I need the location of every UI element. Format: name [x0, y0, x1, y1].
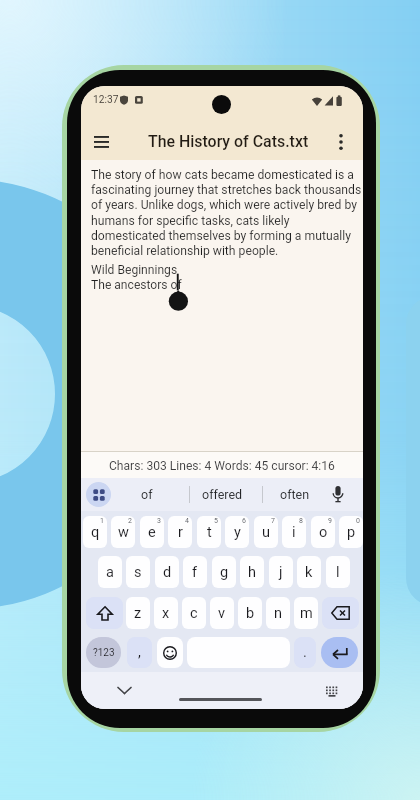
staticText: w [118, 524, 129, 541]
button[interactable] [318, 681, 345, 702]
button[interactable] [89, 130, 113, 154]
button[interactable] [329, 130, 353, 154]
staticText: humans for specific tasks, cats likely [91, 214, 290, 228]
staticText: The History of Cats.txt [148, 132, 309, 151]
button[interactable] [322, 597, 359, 629]
button[interactable] [326, 482, 350, 506]
button[interactable] [321, 637, 358, 668]
staticText: l [336, 564, 340, 581]
button[interactable] [86, 482, 111, 507]
staticText: v [218, 605, 226, 622]
staticText: 9 [328, 517, 332, 525]
button[interactable]: , [127, 637, 152, 668]
staticText: e [148, 524, 156, 541]
staticText: ?123 [93, 647, 115, 659]
button[interactable]: i [282, 516, 306, 548]
button[interactable] [86, 597, 123, 629]
staticText: b [246, 605, 255, 622]
staticText: 8 [299, 517, 303, 525]
button[interactable]: s [126, 556, 150, 588]
staticText: z [134, 605, 142, 622]
button[interactable]: j [269, 556, 293, 588]
button[interactable]: a [98, 556, 122, 588]
staticText: d [163, 564, 172, 581]
staticText: of years. Unlike dogs, which were active… [91, 198, 357, 212]
staticText: beneficial relationship with people. [91, 244, 279, 258]
staticText: u [262, 524, 270, 541]
staticText: k [305, 564, 313, 581]
staticText: o [319, 524, 328, 541]
button[interactable]: h [240, 556, 264, 588]
button[interactable]: q [83, 516, 107, 548]
staticText: fascinating journey that stretches back … [91, 183, 362, 197]
button[interactable]: m [294, 597, 318, 629]
staticText: The story of how cats became domesticate… [91, 168, 354, 182]
button[interactable]: p [339, 516, 363, 548]
button[interactable]: c [182, 597, 206, 629]
button[interactable]: g [212, 556, 236, 588]
staticText: s [134, 564, 142, 581]
staticText: x [162, 605, 170, 622]
button[interactable]: w [111, 516, 135, 548]
staticText: i [292, 524, 296, 541]
button[interactable]: often [273, 482, 317, 506]
staticText: , [138, 644, 141, 661]
button[interactable]: k [297, 556, 321, 588]
staticText: y [234, 524, 241, 541]
button[interactable] [157, 637, 183, 668]
staticText: f [192, 564, 198, 581]
staticText: 5 [214, 517, 218, 525]
staticText: t [207, 524, 212, 541]
staticText: 0 [356, 517, 360, 525]
staticText: offered [202, 487, 243, 502]
staticText: 1 [100, 517, 104, 525]
staticText: j [279, 564, 283, 581]
staticText: h [248, 564, 256, 581]
button[interactable]: b [238, 597, 262, 629]
staticText: a [106, 564, 114, 581]
staticText: c [190, 605, 198, 622]
staticText: . [303, 644, 307, 661]
button[interactable]: v [210, 597, 234, 629]
button[interactable]: y [225, 516, 249, 548]
staticText: The ancestors of [91, 278, 182, 292]
staticText: g [220, 564, 229, 581]
staticText: Wild Beginnings [91, 263, 178, 277]
button[interactable]: o [311, 516, 335, 548]
staticText: 3 [157, 517, 161, 525]
staticText: of [141, 487, 153, 502]
button[interactable]: z [126, 597, 150, 629]
staticText: 4 [185, 517, 189, 525]
button[interactable]: d [155, 556, 179, 588]
staticText: often [280, 487, 310, 502]
staticText: domesticated themselves by forming a mut… [91, 229, 351, 243]
button[interactable]: x [154, 597, 178, 629]
button[interactable]: r [168, 516, 192, 548]
staticText: m [300, 605, 313, 622]
button[interactable]: t [197, 516, 221, 548]
staticText: r [178, 524, 183, 541]
button[interactable]: n [266, 597, 290, 629]
button[interactable]: l [326, 556, 350, 588]
button[interactable]: f [183, 556, 207, 588]
staticText: 12:37 [93, 94, 119, 106]
staticText: 6 [242, 517, 246, 525]
staticText: 7 [271, 517, 275, 525]
button[interactable]: u [254, 516, 278, 548]
button[interactable]: e [140, 516, 164, 548]
button[interactable] [111, 680, 138, 701]
button[interactable]: . [294, 637, 316, 668]
button[interactable] [187, 637, 290, 668]
button[interactable]: of [127, 482, 166, 506]
staticText: n [274, 605, 283, 622]
staticText: p [347, 524, 356, 541]
button[interactable]: offered [196, 482, 248, 506]
button[interactable]: ?123 [86, 637, 121, 668]
staticText: 2 [128, 517, 132, 525]
staticText: q [91, 524, 100, 541]
staticText: Chars: 303 Lines: 4 Words: 45 cursor: 4:… [109, 459, 335, 473]
